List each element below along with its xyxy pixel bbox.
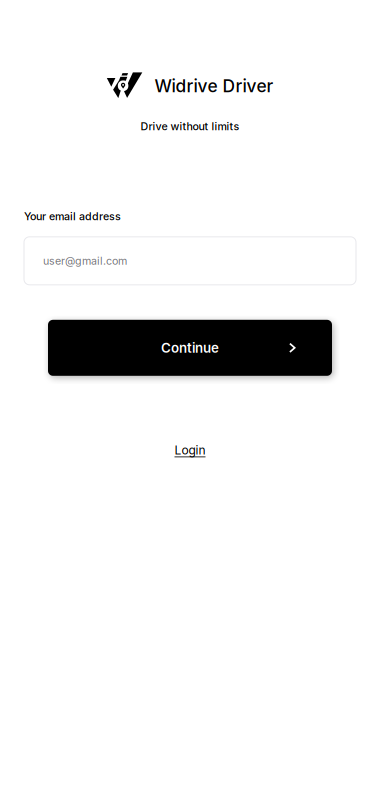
button[interactable]: user@gmail.com bbox=[24, 237, 356, 285]
staticText: Drive without limits bbox=[140, 120, 239, 133]
staticText: Widrive Driver bbox=[154, 75, 273, 96]
staticText: user@gmail.com bbox=[43, 254, 127, 267]
button[interactable]: Login bbox=[166, 438, 213, 462]
staticText: Continue bbox=[161, 340, 219, 356]
staticText: Your email address bbox=[24, 210, 121, 223]
button[interactable]: Continue bbox=[48, 320, 332, 376]
staticText: Login bbox=[174, 443, 205, 457]
